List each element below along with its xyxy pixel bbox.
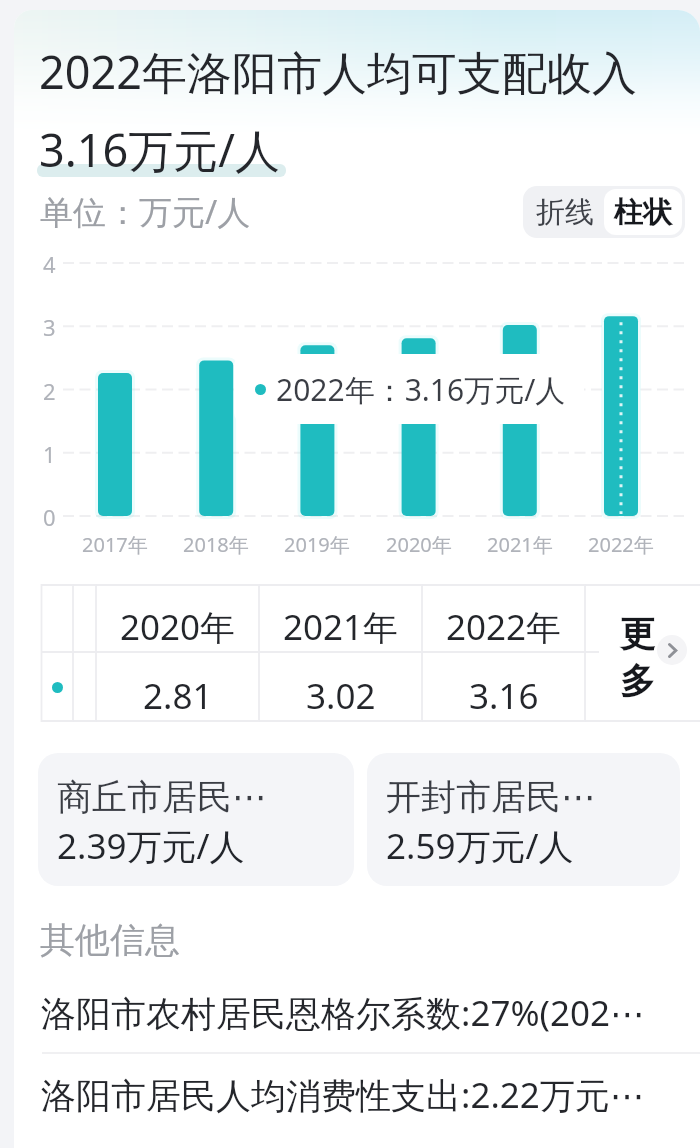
- staticText: 3.16: [469, 672, 539, 720]
- staticText: 4: [43, 249, 56, 277]
- staticText: 2.59万元/人: [386, 822, 574, 870]
- staticText: 商丘市居民⋯: [57, 775, 267, 819]
- staticText: 2019年: [284, 531, 350, 557]
- button[interactable]: 洛阳市居民人均消费性支出:2.22万元⋯: [25, 1055, 697, 1135]
- staticText: 更 多: [620, 612, 655, 704]
- staticText: 2.39万元/人: [57, 822, 245, 870]
- button[interactable]: 洛阳市农村居民恩格尔系数:27%(202⋯: [25, 973, 697, 1053]
- staticText: 开封市居民⋯: [386, 775, 596, 819]
- staticText: 2022年洛阳市人均可支配收入: [39, 41, 637, 102]
- button[interactable]: 开封市居民⋯: [367, 753, 680, 886]
- staticText: 1: [43, 439, 56, 467]
- button[interactable]: 更多: [599, 584, 700, 722]
- staticText: 2022年: [446, 603, 562, 651]
- staticText: 2.81: [143, 672, 213, 720]
- staticText: 2021年: [487, 531, 553, 557]
- staticText: 2018年: [183, 531, 249, 557]
- button[interactable]: 商丘市居民⋯: [38, 753, 354, 886]
- staticText: 2017年: [82, 531, 148, 557]
- staticText: 3.02: [306, 672, 376, 720]
- staticText: 洛阳市农村居民恩格尔系数:27%(202⋯: [41, 989, 646, 1037]
- staticText: 2021年: [283, 603, 399, 651]
- staticText: 洛阳市居民人均消费性支出:2.22万元⋯: [41, 1071, 645, 1119]
- staticText: 2: [43, 376, 56, 404]
- staticText: 2020年: [120, 603, 236, 651]
- button[interactable]: 柱状: [604, 189, 682, 235]
- staticText: 0: [43, 502, 56, 530]
- staticText: 3: [43, 312, 56, 340]
- staticText: 折线: [536, 194, 594, 231]
- button[interactable]: 折线: [526, 189, 604, 235]
- staticText: 3.16万元/人: [39, 119, 281, 180]
- staticText: 2020年: [386, 531, 452, 557]
- staticText: 2022年: [588, 531, 654, 557]
- staticText: 柱状: [614, 194, 672, 231]
- staticText: 2022年：3.16万元/人: [276, 369, 566, 410]
- staticText: 其他信息: [40, 918, 180, 962]
- staticText: 单位：万元/人: [40, 189, 251, 234]
